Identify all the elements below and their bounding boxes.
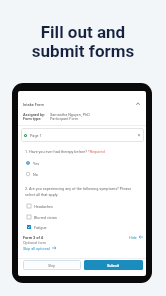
staticText: Fatigue (34, 225, 47, 229)
staticText: Fill out and submit forms (0, 22, 166, 62)
button[interactable]: Headaches (27, 204, 54, 208)
button[interactable]: Skip all optional (23, 246, 56, 250)
button[interactable]: Hide (129, 235, 143, 239)
button[interactable]: No (26, 172, 38, 176)
staticText: Skip (48, 263, 56, 267)
staticText: Participant Form (50, 116, 79, 120)
button[interactable]: Yes (26, 161, 40, 165)
staticText: Blurred vision (34, 215, 57, 219)
button[interactable]: Skip (23, 260, 81, 270)
staticText: Optional form (23, 240, 47, 244)
button[interactable]: Submit (84, 260, 143, 270)
staticText: Form type: (23, 116, 42, 120)
staticText: Yes (33, 161, 40, 165)
staticText: 1. Have you ever had therapy before? (25, 149, 88, 153)
button[interactable]: Blurred vision (27, 215, 57, 219)
staticText: Submit (107, 263, 120, 267)
button[interactable]: Fatigue (27, 225, 47, 229)
staticText: Page 1 (30, 133, 42, 137)
staticText: Hide (129, 235, 137, 239)
button[interactable]: Collapse Intake Form (134, 100, 142, 108)
staticText: Assigned by: (23, 112, 46, 116)
button[interactable]: Page 1 (21, 128, 144, 142)
staticText: 2. Are you experiencing any of the follo… (25, 186, 132, 196)
staticText: Intake Form (23, 102, 44, 107)
staticText: *Required (88, 149, 105, 153)
staticText: Form 3 of 4 (23, 235, 44, 240)
staticText: Headaches (34, 204, 54, 208)
staticText: No (33, 172, 38, 176)
staticText: Skip all optional (23, 246, 50, 250)
staticText: Samantha Nguyen, PhD (50, 112, 90, 116)
